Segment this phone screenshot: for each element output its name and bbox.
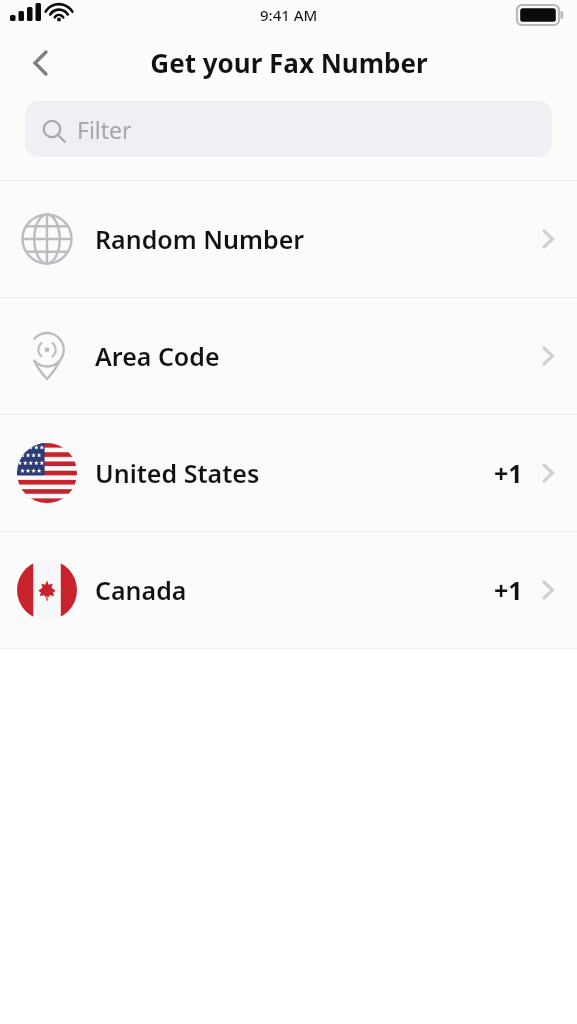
staticText: Area Code — [95, 339, 535, 373]
button[interactable]: Filter — [25, 101, 552, 157]
staticText: +1 — [494, 456, 523, 490]
staticText: United States — [95, 456, 494, 490]
button[interactable]: Back — [14, 37, 66, 89]
staticText: Filter — [77, 114, 132, 145]
button[interactable]: Area Code — [0, 298, 577, 414]
staticText: Canada — [95, 573, 494, 607]
button[interactable]: Random Number — [0, 181, 577, 297]
staticText: Random Number — [95, 222, 535, 256]
staticText: 9:41 AM — [260, 5, 318, 25]
staticText: +1 — [494, 573, 523, 607]
button[interactable]: United States — [0, 415, 577, 531]
staticText: Get your Fax Number — [150, 45, 428, 80]
button[interactable]: Canada — [0, 532, 577, 648]
